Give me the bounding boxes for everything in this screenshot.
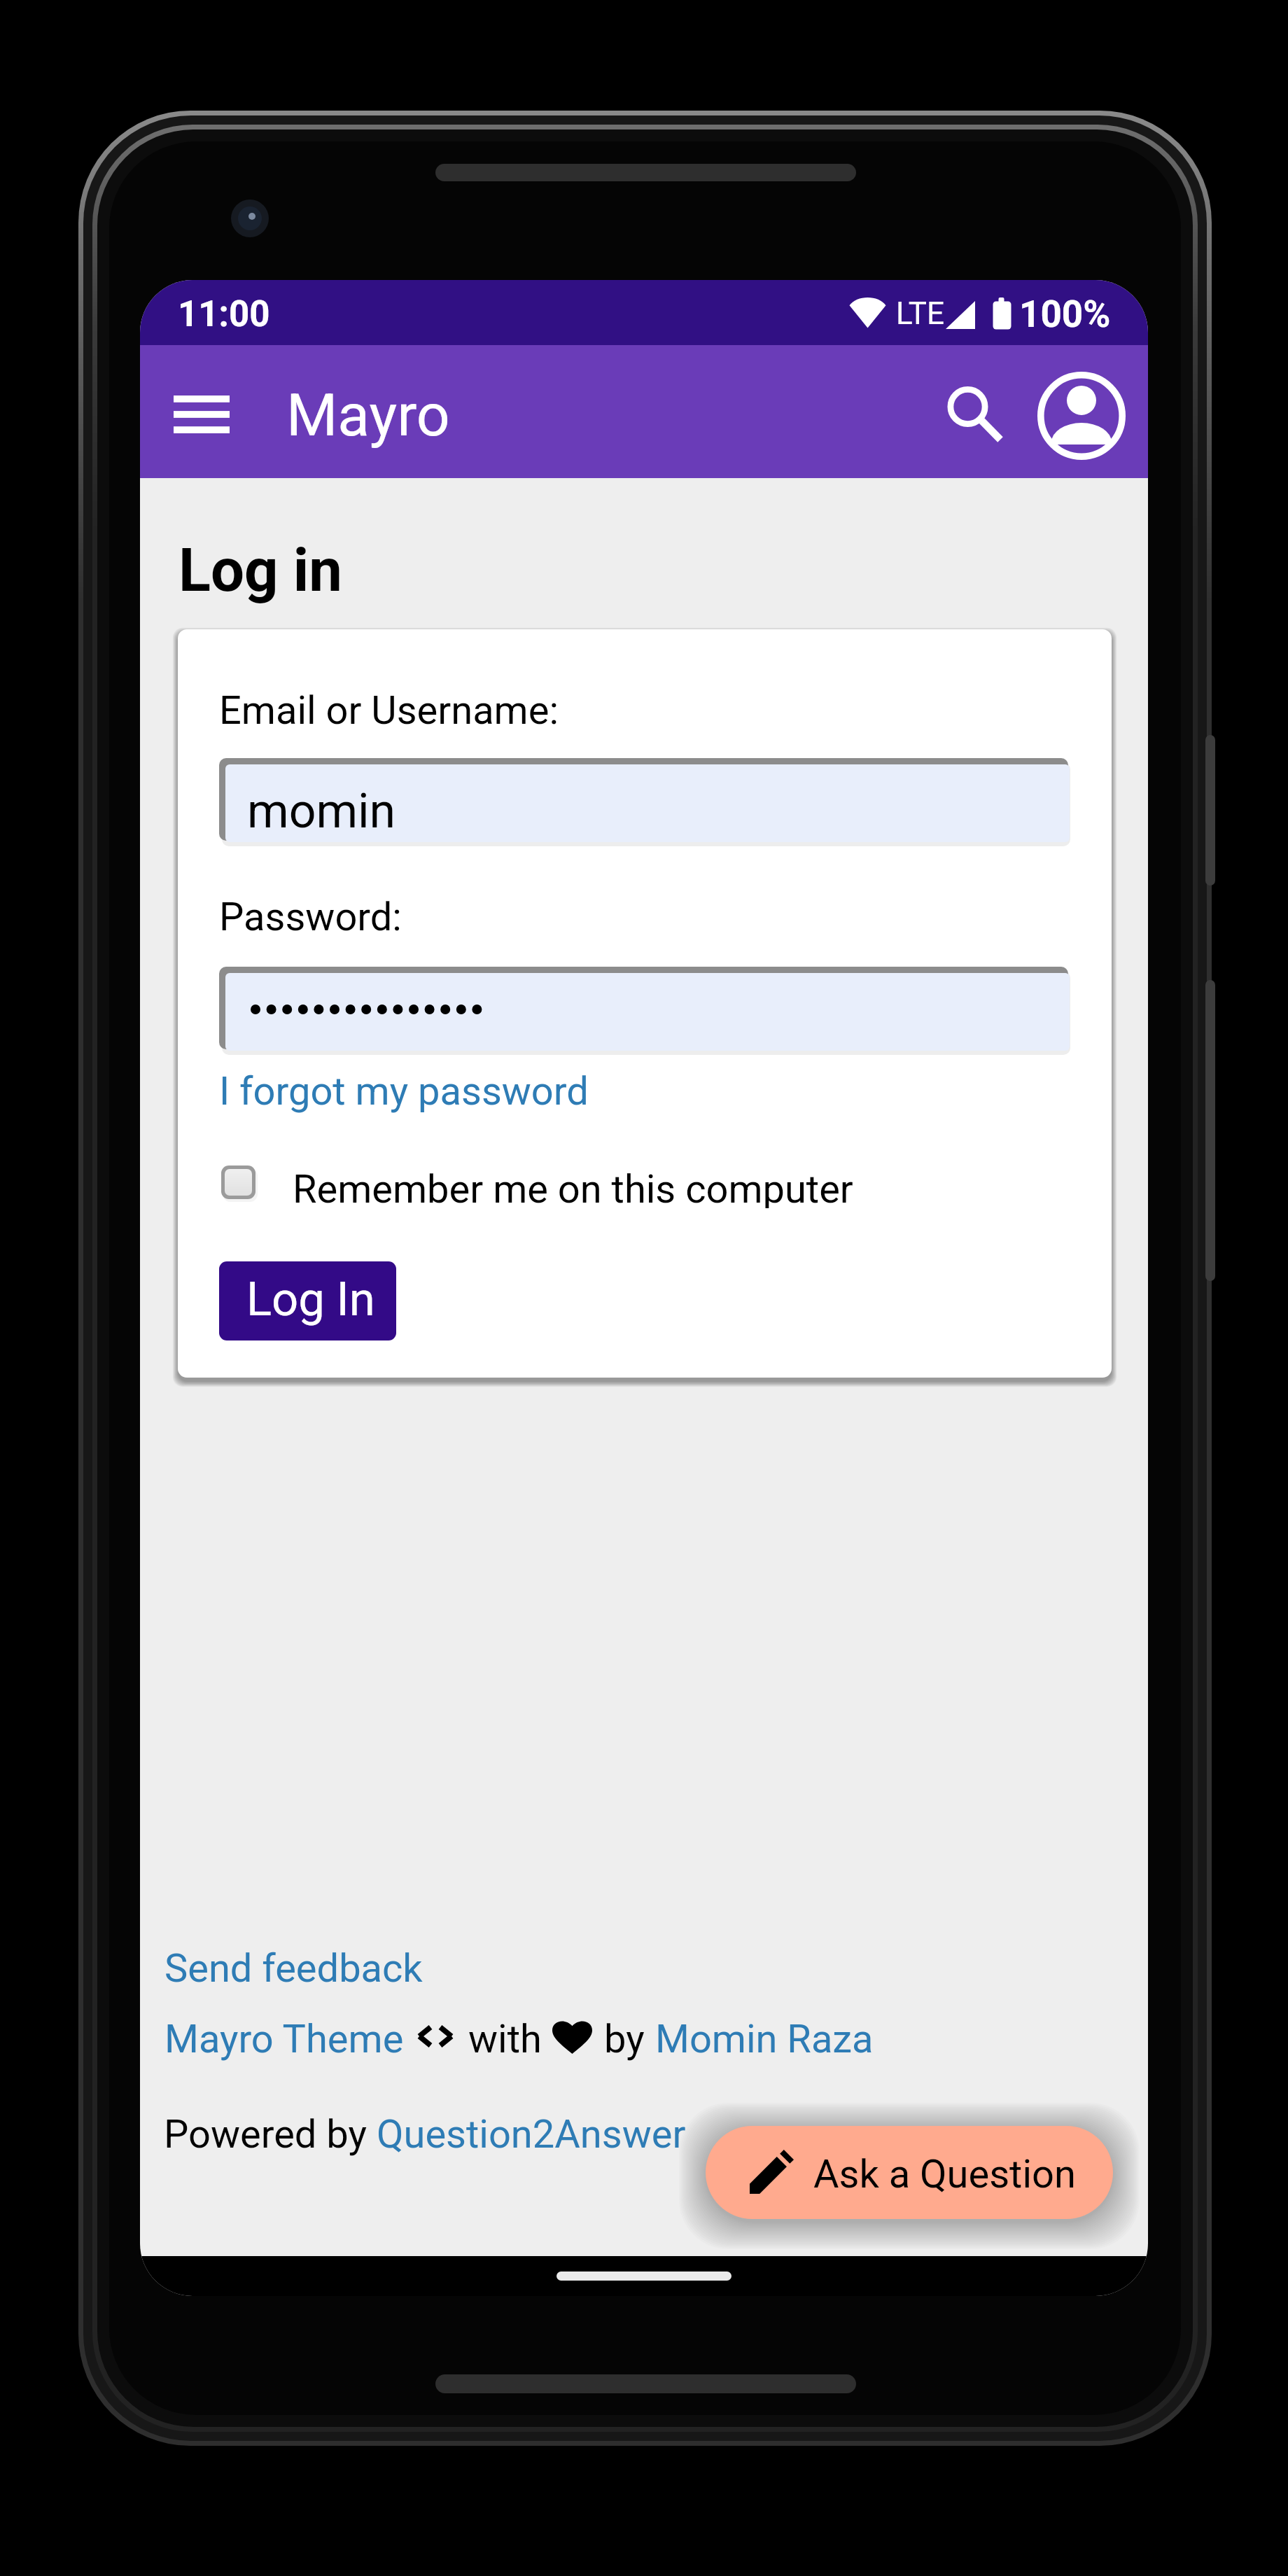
button[interactable]: Question2Answer [377,2111,686,2157]
staticText: Email or Username: [219,687,559,734]
button[interactable]: Remember me on this computer [221,1161,1047,1203]
staticText: Remember me on this computer [293,1166,853,1208]
button[interactable]: Search [925,365,1012,452]
staticText: LTE [896,295,945,332]
staticText: Log in [178,535,342,605]
button[interactable]: I forgot my password [219,1068,589,1114]
staticText: Powered by [164,2111,377,2157]
button[interactable]: Account [1037,372,1126,460]
staticText: with [468,2016,542,2062]
staticText: Log In [246,1272,375,1327]
button[interactable]: Mayro Theme [164,2016,404,2062]
staticText: Ask a Question [813,2151,1076,2197]
button[interactable] [219,967,1070,1055]
button[interactable]: Momin Raza [655,2016,874,2062]
staticText: by [604,2016,645,2062]
staticText: momin [247,783,396,839]
button[interactable]: Log In [219,1261,396,1340]
button[interactable]: Send feedback [164,1945,423,1991]
button[interactable]: momin [219,758,1070,846]
button[interactable]: Ask a Question [706,2126,1113,2219]
staticText: Password: [219,894,402,940]
staticText: Mayro [286,381,450,449]
staticText: 100% [1019,293,1111,336]
staticText: 11:00 [178,293,270,335]
button[interactable]: Open navigation menu [155,368,248,461]
